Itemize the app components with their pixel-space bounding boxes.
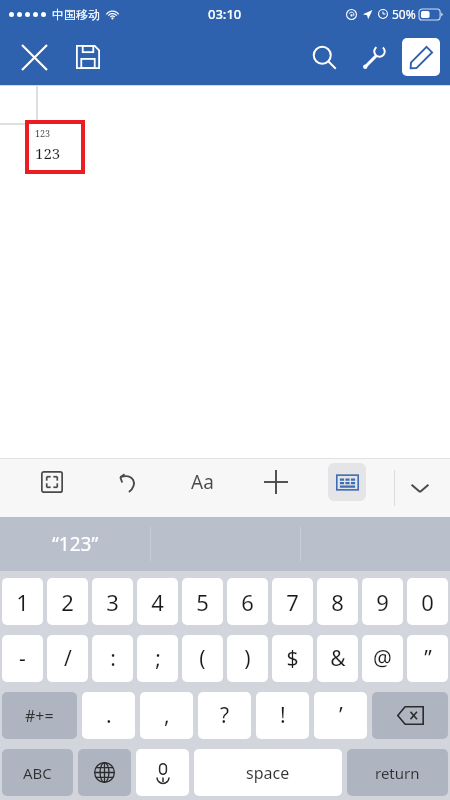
staticText: ;: [155, 644, 161, 673]
button[interactable]: 2: [47, 578, 88, 625]
button[interactable]: Keyboard: [328, 463, 366, 501]
button[interactable]: #+=: [2, 692, 77, 739]
button[interactable]: Format text: [179, 459, 225, 505]
staticText: “123”: [52, 531, 99, 557]
button[interactable]: 6: [227, 578, 268, 625]
staticText: Aa: [191, 469, 214, 495]
button[interactable]: ): [227, 635, 268, 682]
button[interactable]: Voice input: [136, 749, 189, 796]
button[interactable]: Save: [66, 35, 110, 79]
staticText: ”: [424, 644, 432, 673]
button[interactable]: 4: [137, 578, 178, 625]
staticText: :: [110, 644, 116, 673]
button[interactable]: Backspace: [372, 692, 448, 739]
button[interactable]: :: [92, 635, 133, 682]
button[interactable]: Edit: [402, 38, 440, 76]
button[interactable]: @: [362, 635, 403, 682]
staticText: 2: [61, 587, 74, 617]
button[interactable]: /: [47, 635, 88, 682]
button[interactable]: Change keyboard language: [78, 749, 131, 796]
staticText: 123: [35, 127, 51, 139]
button[interactable]: space: [194, 749, 342, 796]
button[interactable]: ;: [137, 635, 178, 682]
staticText: return: [375, 763, 420, 783]
staticText: 1: [16, 587, 29, 617]
staticText: #+=: [25, 705, 54, 727]
staticText: @: [373, 644, 392, 673]
button[interactable]: 0: [407, 578, 448, 625]
button[interactable]: ABC: [2, 749, 73, 796]
button[interactable]: $: [272, 635, 313, 682]
button[interactable]: Hide keyboard: [400, 468, 440, 508]
staticText: $: [286, 644, 299, 673]
button[interactable]: (: [182, 635, 223, 682]
button[interactable]: ’: [314, 692, 367, 739]
staticText: &: [330, 644, 346, 673]
staticText: .: [106, 701, 112, 730]
button[interactable]: 1: [2, 578, 43, 625]
staticText: space: [246, 762, 290, 784]
staticText: 4: [151, 587, 164, 617]
staticText: ,: [164, 701, 170, 730]
staticText: ’: [339, 701, 343, 730]
staticText: /: [64, 644, 72, 673]
button[interactable]: 8: [317, 578, 358, 625]
staticText: 50%: [392, 6, 416, 22]
button[interactable]: ,: [140, 692, 193, 739]
button[interactable]: -: [2, 635, 43, 682]
staticText: 8: [331, 587, 344, 617]
staticText: ABC: [23, 763, 52, 783]
button[interactable]: Search: [302, 35, 346, 79]
staticText: ): [244, 644, 251, 673]
staticText: (: [199, 644, 206, 673]
button[interactable]: ”: [407, 635, 448, 682]
staticText: -: [19, 644, 26, 673]
button[interactable]: Undo: [104, 459, 150, 505]
staticText: ?: [220, 701, 230, 730]
button[interactable]: ?: [198, 692, 251, 739]
button[interactable]: Tools: [352, 35, 396, 79]
staticText: !: [280, 701, 286, 730]
button[interactable]: !: [256, 692, 309, 739]
button[interactable]: Select object: [29, 459, 75, 505]
button[interactable]: 7: [272, 578, 313, 625]
button[interactable]: “123”: [0, 517, 150, 571]
staticText: 9: [376, 587, 389, 617]
staticText: 7: [286, 587, 299, 617]
button[interactable]: &: [317, 635, 358, 682]
staticText: 0: [421, 587, 434, 617]
staticText: 6: [241, 587, 254, 617]
button[interactable]: Insert: [253, 459, 299, 505]
staticText: 3: [106, 587, 119, 617]
staticText: 03:10: [208, 5, 242, 23]
button[interactable]: 5: [182, 578, 223, 625]
button[interactable]: Close: [12, 35, 56, 79]
button[interactable]: return: [347, 749, 448, 796]
staticText: 5: [196, 587, 209, 617]
staticText: 中国移动: [52, 7, 100, 22]
staticText: 123: [35, 143, 61, 163]
button[interactable]: 9: [362, 578, 403, 625]
button[interactable]: .: [82, 692, 135, 739]
button[interactable]: 3: [92, 578, 133, 625]
